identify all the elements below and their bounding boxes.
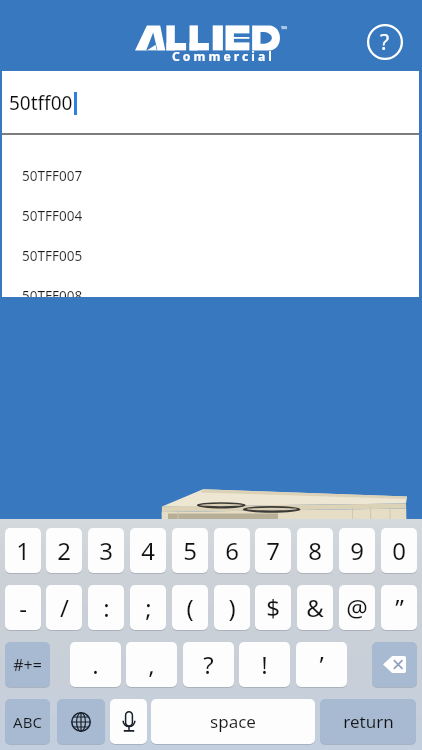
button[interactable]: ( <box>172 585 208 630</box>
button[interactable]: Change keyboard <box>57 699 105 744</box>
button[interactable]: 0 <box>381 528 417 573</box>
button[interactable]: 50tff00 <box>2 71 419 133</box>
button[interactable]: / <box>46 585 82 630</box>
staticText: ) <box>228 591 236 624</box>
staticText: : <box>103 591 110 624</box>
staticText: ! <box>261 648 268 681</box>
staticText: ABC <box>13 712 42 732</box>
staticText: space <box>210 710 256 733</box>
staticText: 9 <box>350 534 364 567</box>
button[interactable]: 5 <box>172 528 208 573</box>
staticText: ’ <box>319 648 324 681</box>
button[interactable]: ” <box>381 585 417 630</box>
button[interactable]: , <box>126 642 177 687</box>
staticText: 3 <box>99 534 113 567</box>
button[interactable]: 9 <box>339 528 375 573</box>
button[interactable]: 7 <box>255 528 291 573</box>
staticText: & <box>306 591 324 624</box>
staticText: 7 <box>266 534 280 567</box>
button[interactable]: Backspace <box>372 642 417 687</box>
staticText: , <box>148 648 155 681</box>
button[interactable]: ’ <box>296 642 347 687</box>
button[interactable]: ABC <box>5 699 50 744</box>
button[interactable]: return <box>320 699 416 744</box>
button[interactable]: $ <box>255 585 291 630</box>
button[interactable]: 50TFF004 <box>2 196 419 236</box>
staticText: 6 <box>225 534 239 567</box>
staticText: 50TFF007 <box>22 167 83 185</box>
staticText: - <box>19 591 27 624</box>
button[interactable]: - <box>5 585 41 630</box>
staticText: 1 <box>16 534 30 567</box>
staticText: #+= <box>13 654 42 676</box>
staticText: return <box>343 710 394 733</box>
button[interactable]: 50TFF008 <box>2 276 419 297</box>
staticText: . <box>92 648 99 681</box>
button[interactable]: . <box>70 642 121 687</box>
button[interactable]: 2 <box>46 528 82 573</box>
button[interactable]: 50TFF005 <box>2 236 419 276</box>
staticText: ” <box>395 591 404 624</box>
button[interactable]: ? <box>183 642 234 687</box>
button[interactable]: ; <box>130 585 166 630</box>
button[interactable]: Help <box>364 21 406 63</box>
button[interactable]: @ <box>339 585 375 630</box>
staticText: ( <box>186 591 194 624</box>
staticText: / <box>60 591 69 624</box>
button[interactable]: 3 <box>88 528 124 573</box>
staticText: 50TFF008 <box>22 287 83 297</box>
button[interactable]: 4 <box>130 528 166 573</box>
button[interactable]: & <box>297 585 333 630</box>
button[interactable]: : <box>88 585 124 630</box>
staticText: 5 <box>183 534 197 567</box>
staticText: 50TFF004 <box>22 207 83 225</box>
button[interactable]: ) <box>214 585 250 630</box>
button[interactable]: 1 <box>5 528 41 573</box>
button[interactable]: 8 <box>297 528 333 573</box>
button[interactable]: ! <box>239 642 290 687</box>
button[interactable]: 50TFF007 <box>2 156 419 196</box>
button[interactable]: Voice input <box>110 699 147 744</box>
staticText: 50TFF005 <box>22 247 83 265</box>
staticText: 4 <box>141 534 155 567</box>
staticText: @ <box>346 591 368 624</box>
staticText: 2 <box>57 534 71 567</box>
staticText: $ <box>266 591 280 624</box>
button[interactable]: #+= <box>5 642 50 687</box>
staticText: ™ <box>281 23 288 34</box>
staticText: ? <box>380 28 390 57</box>
staticText: ? <box>203 648 214 681</box>
staticText: 0 <box>392 534 406 567</box>
staticText: Commercial <box>172 48 276 65</box>
button[interactable]: space <box>151 699 315 744</box>
button[interactable]: 6 <box>214 528 250 573</box>
staticText: 50tff00 <box>9 90 73 116</box>
staticText: ; <box>145 591 152 624</box>
staticText: 8 <box>308 534 322 567</box>
